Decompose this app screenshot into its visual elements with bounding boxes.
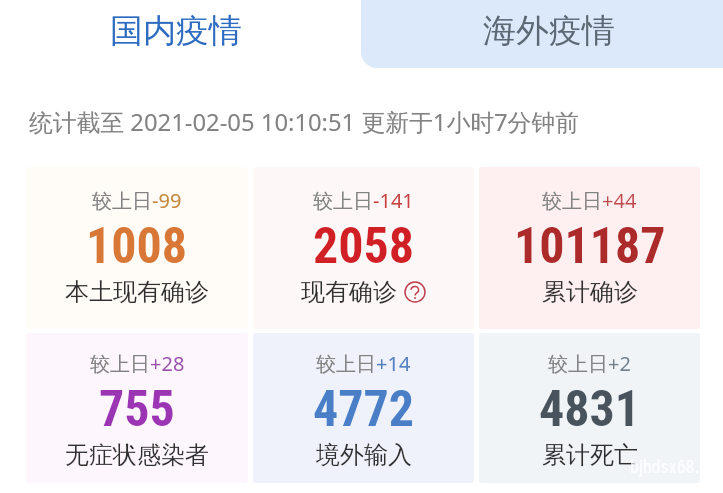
staticText: 1008 [86, 217, 188, 276]
staticText: 较上日+14 [316, 350, 411, 377]
staticText: 统计截至 2021-02-05 10:10:51 更新于1小时7分钟前 [29, 106, 579, 139]
staticText: 累计死亡 [542, 440, 638, 470]
button[interactable]: 较上日+28 [26, 333, 248, 483]
button[interactable]: 较上日+2 [479, 333, 700, 483]
button[interactable]: 较上日+44 [479, 167, 700, 329]
button[interactable]: 海外疫情 [361, 0, 723, 68]
staticText: 较上日+2 [548, 350, 631, 377]
staticText: 4831 [539, 380, 641, 439]
staticText: 755 [99, 380, 175, 439]
staticText: 境外输入 [316, 440, 412, 470]
staticText: 2058 [313, 217, 415, 276]
staticText: 海外疫情 [483, 10, 615, 52]
staticText: 较上日+28 [90, 350, 185, 377]
staticText: bjhdsx68.c [630, 456, 700, 477]
staticText: 较上日-141 [313, 187, 414, 214]
other: More info about current confirmed [404, 281, 426, 303]
button[interactable]: 较上日+14 [253, 333, 474, 483]
staticText: 累计确诊 [542, 277, 638, 307]
staticText: 国内疫情 [110, 10, 242, 52]
button[interactable]: 国内疫情 [0, 0, 361, 68]
staticText: 较上日-99 [92, 187, 182, 214]
button[interactable]: 较上日-99 [26, 167, 248, 329]
staticText: 4772 [313, 380, 415, 439]
button[interactable]: 较上日-141 [253, 167, 474, 329]
staticText: 本土现有确诊 [65, 277, 209, 307]
staticText: 现有确诊 [301, 277, 397, 307]
staticText: 101187 [514, 217, 666, 276]
staticText: 无症状感染者 [65, 440, 209, 470]
staticText: 较上日+44 [542, 187, 637, 214]
